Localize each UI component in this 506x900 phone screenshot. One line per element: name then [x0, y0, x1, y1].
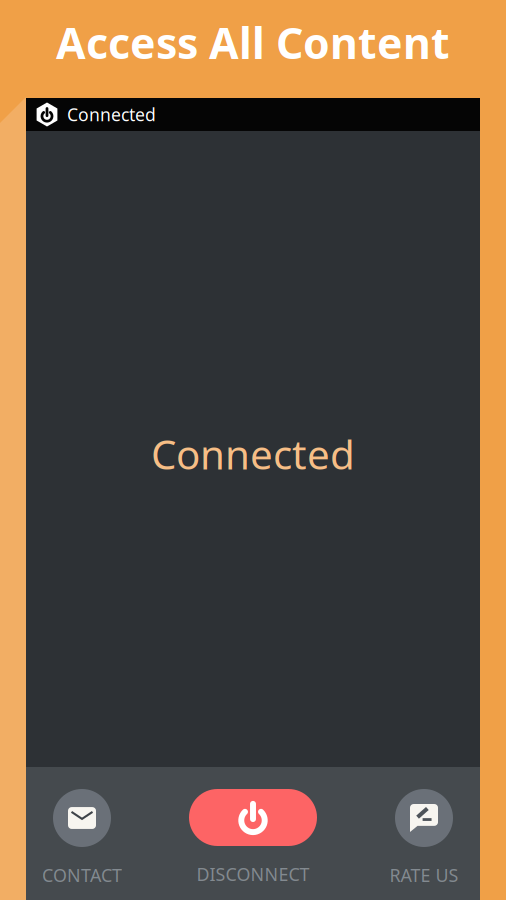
- staticText: Access All Content: [56, 13, 450, 72]
- staticText: DISCONNECT: [196, 862, 309, 886]
- staticText: RATE US: [389, 863, 458, 887]
- staticText: Connected: [151, 427, 355, 481]
- button[interactable]: DISCONNECT: [182, 789, 324, 886]
- button[interactable]: CONTACT: [26, 789, 138, 887]
- button[interactable]: RATE US: [368, 789, 480, 887]
- staticText: CONTACT: [42, 863, 122, 887]
- staticText: Connected: [67, 102, 156, 126]
